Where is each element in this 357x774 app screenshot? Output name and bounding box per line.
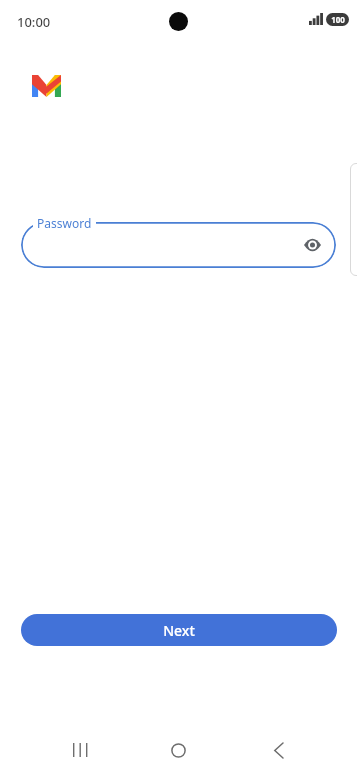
staticText: 100 bbox=[331, 14, 345, 25]
button[interactable]: Recent apps bbox=[61, 726, 97, 774]
button[interactable]: Show password bbox=[300, 233, 324, 257]
button[interactable]: Back bbox=[260, 726, 296, 774]
staticText: Password bbox=[37, 215, 92, 231]
button[interactable]: Home bbox=[160, 726, 196, 774]
staticText: 10:00 bbox=[17, 13, 51, 31]
button[interactable]: Show password bbox=[21, 222, 336, 268]
button[interactable]: Next bbox=[21, 614, 337, 646]
staticText: Next bbox=[163, 621, 195, 640]
button[interactable]: Password bbox=[37, 215, 92, 231]
